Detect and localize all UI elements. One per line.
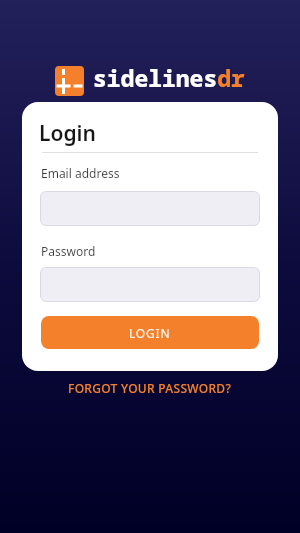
button[interactable]: FORGOT YOUR PASSWORD? — [68, 380, 232, 396]
button[interactable] — [40, 267, 260, 302]
staticText: LOGIN — [129, 325, 171, 341]
staticText: sidelinesdr — [93, 62, 245, 93]
button[interactable]: LOGIN — [41, 316, 259, 349]
staticText: Login — [39, 119, 96, 148]
staticText: Email address — [41, 165, 120, 181]
staticText: Password — [41, 243, 96, 259]
button[interactable] — [40, 191, 260, 226]
